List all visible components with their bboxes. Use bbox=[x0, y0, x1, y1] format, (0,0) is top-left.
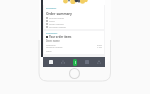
button[interactable]: Explore bbox=[56, 57, 69, 67]
staticText: Order summary bbox=[46, 11, 72, 15]
staticText: Cash bbox=[49, 19, 55, 22]
staticText: Item name bbox=[46, 39, 60, 42]
staticText: 8.50 bbox=[97, 43, 102, 46]
staticText: Subtotal bbox=[46, 43, 56, 46]
staticText: Total bbox=[46, 49, 52, 52]
button[interactable]: Orders bbox=[43, 57, 56, 67]
staticText: 1.20 bbox=[97, 45, 102, 48]
staticText: Service charge bbox=[46, 45, 63, 48]
staticText: Pickup today bbox=[49, 16, 65, 19]
staticText: PAYMENT bbox=[46, 7, 57, 10]
staticText: Main Station bbox=[49, 22, 64, 25]
button[interactable]: Profile bbox=[93, 57, 105, 67]
button[interactable]: Home bbox=[69, 57, 81, 67]
button[interactable]: Activity bbox=[81, 57, 93, 67]
staticText: SUMMARY bbox=[46, 32, 58, 35]
staticText: Your order items bbox=[49, 35, 72, 39]
staticText: Choose option bbox=[49, 25, 67, 28]
